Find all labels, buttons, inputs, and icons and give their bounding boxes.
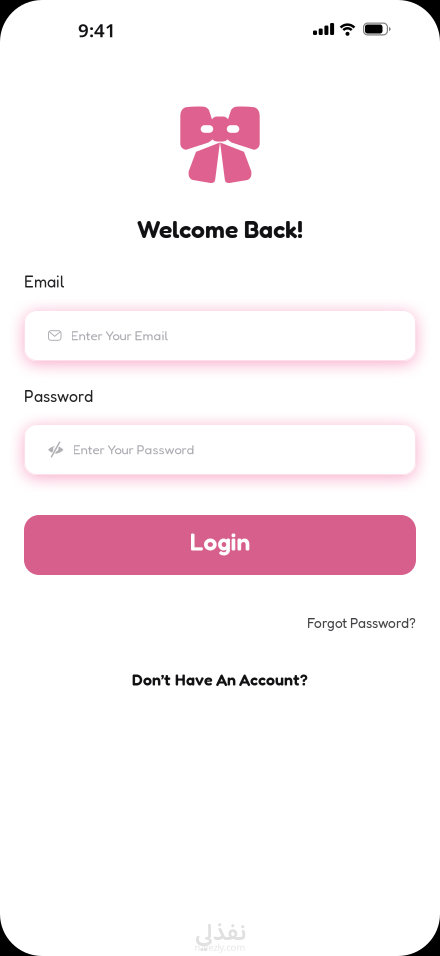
button[interactable]: Login [24,515,416,575]
staticText: Login [189,527,250,556]
staticText: نفذلي [194,914,245,955]
staticText: Password [24,386,93,406]
button[interactable]: Forgot Password? [307,614,440,631]
button[interactable]: Enter Your Password [24,424,416,475]
button[interactable]: Enter Your Email [24,310,416,361]
staticText: 9:41 [78,18,116,42]
staticText: Don’t Have An Account? [132,670,308,689]
staticText: nafezly.com [194,941,245,953]
button[interactable]: Don’t Have An Account? [132,670,308,689]
staticText: Enter Your Email [70,327,168,343]
staticText: Welcome Back! [137,214,303,244]
staticText: Enter Your Password [72,441,194,457]
staticText: Email [24,272,64,291]
staticText: Forgot Password? [307,614,416,631]
